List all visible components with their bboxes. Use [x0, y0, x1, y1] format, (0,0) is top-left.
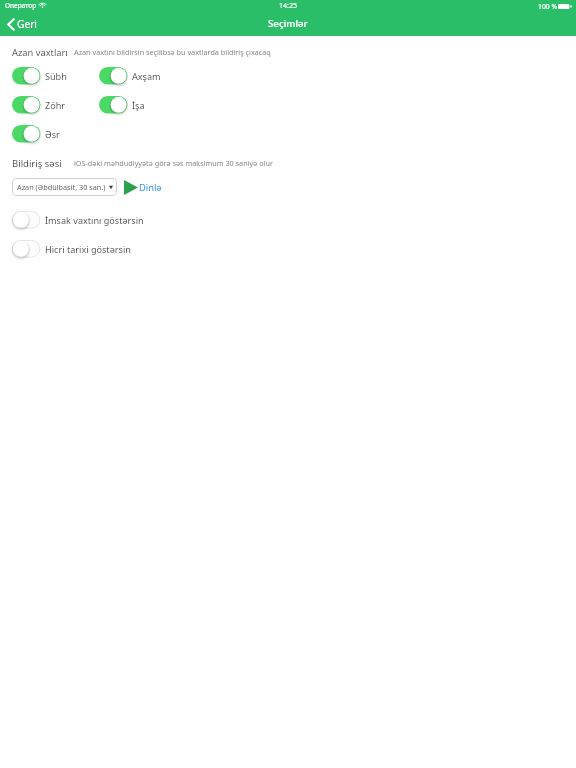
staticText: Zöhr	[45, 99, 66, 111]
staticText: 100 %	[538, 2, 558, 11]
staticText: Azan vaxtını bildirsin seçilibsə bu vaxt…	[74, 47, 271, 57]
staticText: Azan vaxtları	[12, 46, 68, 59]
button[interactable]: Əsr	[12, 125, 60, 144]
staticText: İşa	[132, 99, 145, 111]
other: Wi-Fi	[39, 3, 46, 8]
staticText: Оператор	[5, 1, 37, 10]
staticText: İmsak vaxtını göstərsin	[45, 214, 144, 226]
button[interactable]: Zöhr	[12, 96, 66, 115]
button[interactable]: Sübh	[12, 67, 67, 86]
staticText: Dinlə	[139, 181, 162, 194]
button[interactable]: İmsak vaxtını göstərsin	[12, 211, 144, 230]
staticText: Sübh	[45, 70, 67, 82]
staticText: Bildiriş səsi	[12, 157, 62, 170]
button[interactable]: Hicri tarixi göstərsin	[12, 240, 131, 259]
button[interactable]: Dinlə	[124, 180, 162, 195]
staticText: Əsr	[45, 128, 60, 140]
staticText: 14:25	[279, 0, 298, 10]
button[interactable]: Geri	[0, 15, 43, 35]
staticText: Geri	[17, 17, 37, 31]
staticText: Seçimlər	[268, 17, 308, 30]
button[interactable]: Axşam	[99, 67, 161, 86]
button[interactable]: İşa	[99, 96, 145, 115]
staticText: Hicri tarixi göstərsin	[45, 243, 131, 255]
staticText: Axşam	[132, 70, 161, 82]
button[interactable]: Azan (Əbdülbasit, 30 san.)	[12, 178, 117, 196]
staticText: Azan (Əbdülbasit, 30 san.)	[17, 182, 106, 192]
staticText: iOS-dəki məhdudiyyətə görə səs maksimum …	[74, 158, 273, 168]
